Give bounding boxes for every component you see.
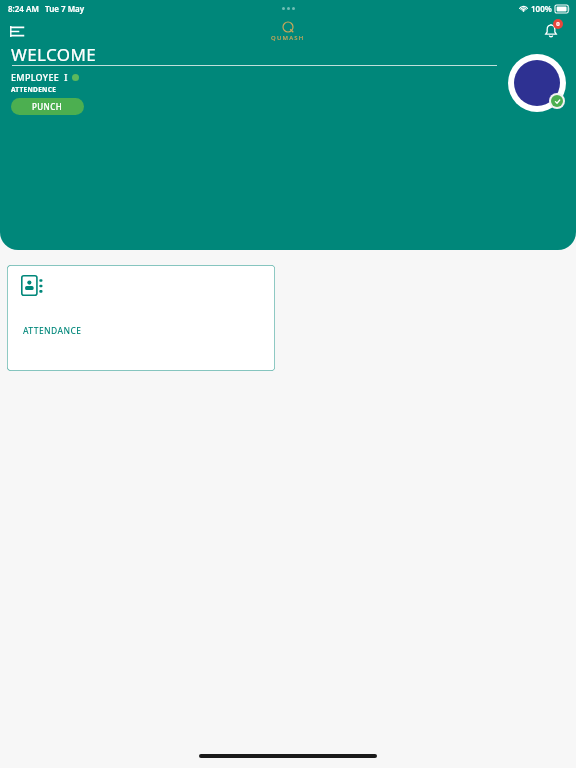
button[interactable]: Profile: [508, 54, 566, 112]
button[interactable]: Notifications: [538, 18, 564, 44]
button[interactable]: Open navigation menu: [6, 20, 28, 42]
staticText: ATTENDENCE: [11, 85, 57, 94]
staticText: 100%: [531, 3, 552, 14]
staticText: Tue 7 May: [45, 3, 85, 14]
staticText: 0: [556, 20, 560, 28]
staticText: WELCOME: [11, 43, 97, 66]
staticText: ATTENDANCE: [23, 325, 82, 337]
button[interactable]: PUNCH: [11, 98, 84, 115]
staticText: QUMASH: [271, 34, 305, 42]
staticText: PUNCH: [32, 101, 63, 112]
staticText: EMPLOYEE I: [11, 71, 68, 83]
staticText: 8:24 AM: [8, 3, 39, 14]
button[interactable]: ATTENDANCE: [7, 265, 275, 371]
